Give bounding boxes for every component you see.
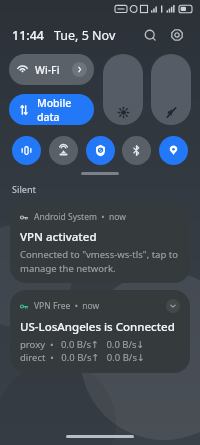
button[interactable]: Expand <box>166 299 180 313</box>
button[interactable]: Settings <box>166 24 188 46</box>
staticText: Tue, 5 Nov <box>54 27 116 44</box>
button[interactable]: Mobile data <box>9 94 94 125</box>
button[interactable]: Wi-Fi details <box>72 62 87 77</box>
button[interactable]: Volume <box>151 54 191 125</box>
staticText: Connected to "vmess-ws-tls", tap to mana… <box>20 248 180 274</box>
staticText: US-LosAngeles is Connected <box>20 319 175 335</box>
button[interactable]: Hotspot <box>49 136 78 165</box>
button[interactable]: Location <box>159 136 188 165</box>
button[interactable]: Bluetooth <box>122 136 151 165</box>
staticText: VPN activated <box>20 229 97 245</box>
button[interactable]: Android System • now <box>10 202 190 283</box>
staticText: VPN Free • now <box>34 300 100 312</box>
staticText: proxy • 0.0 B/s↑ 0.0 B/s↓ <box>20 338 145 351</box>
button[interactable]: VPN Free • now <box>10 290 190 373</box>
staticText: Silent <box>12 183 37 195</box>
staticText: Wi-Fi <box>35 63 60 77</box>
staticText: Android System • now <box>34 211 126 223</box>
staticText: 11:44 <box>12 27 45 44</box>
button[interactable]: Brightness <box>103 54 143 125</box>
staticText: direct • 0.0 B/s↑ 0.0 B/s↓ <box>20 351 145 364</box>
button[interactable]: VPN <box>86 136 115 165</box>
button[interactable]: Search <box>139 24 161 46</box>
button[interactable]: Expand quick settings <box>81 172 119 175</box>
button[interactable]: Vibrate <box>12 136 41 165</box>
staticText: Mobile data <box>37 96 85 124</box>
button[interactable]: Wi-Fi <box>9 54 94 85</box>
